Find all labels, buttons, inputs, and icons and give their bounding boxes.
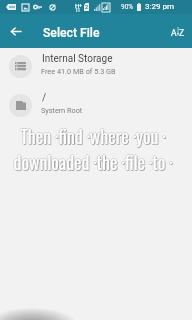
staticText: downloaded ·the ·file ·to · (0, 149, 189, 175)
staticText: downloaded ·the ·file ·to · (0, 148, 189, 174)
button[interactable]: Internal Storage (0, 47, 192, 86)
staticText: Then ·find ·where ·you · (0, 124, 190, 150)
staticText: 3:29 pm (145, 2, 174, 11)
staticText: Then ·find ·where ·you · (0, 124, 190, 150)
staticText: Then ·find ·where ·you · (0, 124, 189, 150)
staticText: downloaded ·the ·file ·to · (0, 149, 188, 175)
button[interactable]: Sort A to Z (165, 18, 191, 44)
button[interactable]: / (0, 86, 192, 125)
staticText: H (75, 2, 80, 9)
staticText: System Root (41, 106, 83, 115)
staticText: Then ·find ·where ·you · (0, 122, 189, 148)
staticText: Then ·find ·where ·you · (0, 123, 190, 149)
staticText: downloaded ·the ·file ·to · (0, 149, 190, 175)
staticText: + (79, 2, 82, 8)
staticText: Free 41.0 MB of 5.3 GB (41, 67, 116, 76)
staticText: Then ·find ·where ·you · (0, 123, 189, 149)
staticText: downloaded ·the ·file ·to · (0, 150, 190, 176)
staticText: 2 (85, 4, 89, 10)
staticText: Select File (43, 26, 100, 40)
staticText: Z (179, 28, 185, 38)
staticText: / (42, 92, 47, 104)
staticText: downloaded ·the ·file ·to · (0, 150, 189, 176)
staticText: 90% (121, 3, 134, 11)
staticText: A (171, 28, 177, 38)
staticText: downloaded ·the ·file ·to · (0, 150, 190, 176)
staticText: Then ·find ·where ·you · (0, 123, 188, 149)
button[interactable]: Navigate up (4, 19, 28, 43)
staticText: Internal Storage (42, 53, 113, 65)
